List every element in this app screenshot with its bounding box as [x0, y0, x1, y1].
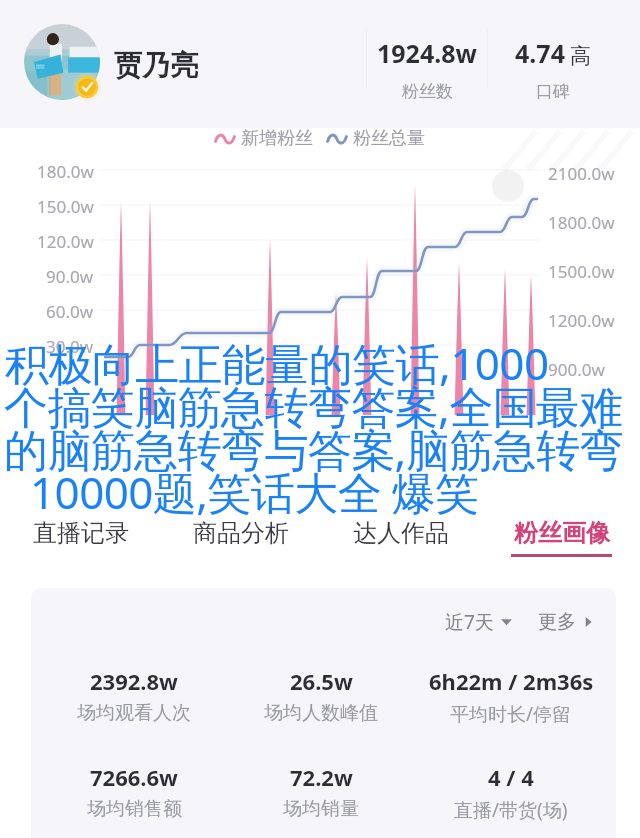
staticText: 26.5w [290, 666, 353, 696]
staticText: 900.0w [548, 358, 605, 381]
staticText: 1924.8w [377, 36, 477, 70]
staticText: 30.0w [46, 335, 94, 358]
staticText: 口碑 [536, 81, 570, 102]
staticText: 商品分析 [193, 518, 289, 548]
staticText: 90.0w [46, 265, 94, 288]
staticText: 近7天 [445, 609, 494, 635]
staticText: 更多 [538, 610, 576, 634]
staticText: 新增粉丝 [241, 127, 313, 150]
staticText: 60.0w [46, 300, 94, 323]
staticText: 平均时长/停留 [450, 701, 572, 727]
button[interactable]: 更多 [538, 610, 592, 634]
staticText: 粉丝总量 [353, 127, 425, 150]
button[interactable]: 粉丝画像 [481, 505, 640, 563]
button[interactable]: 达人作品 [321, 505, 481, 563]
button[interactable]: 近7天 [445, 609, 512, 635]
staticText: 7266.6w [90, 762, 178, 792]
staticText: 场均销量 [283, 797, 359, 821]
staticText: 120.0w [37, 230, 94, 253]
staticText: 6h22m / 2m36s [429, 666, 594, 696]
staticText: 10000题,笑话大全 爆笑 [30, 462, 479, 522]
staticText: 个搞笑脑筋急转弯答案,全国最难 [4, 376, 623, 436]
staticText: 直播/带货(场) [454, 797, 568, 823]
staticText: 场均人数峰值 [264, 701, 378, 725]
staticText: 粉丝画像 [514, 518, 610, 548]
staticText: 2100.0w [548, 162, 615, 185]
staticText: 场均销售额 [87, 797, 182, 821]
staticText: 达人作品 [353, 518, 449, 548]
staticText: 的脑筋急转弯与答案,脑筋急转弯 [4, 419, 623, 479]
staticText: 1200.0w [548, 309, 615, 332]
staticText: 粉丝数 [402, 81, 453, 102]
staticText: 积极向上正能量的笑话,1000 [5, 333, 549, 393]
staticText: 4.74 [515, 36, 565, 70]
staticText: 1500.0w [548, 260, 615, 283]
staticText: 直播记录 [33, 518, 129, 548]
staticText: 贾乃亮 [114, 48, 198, 83]
staticText: 高 [570, 43, 591, 69]
staticText: 150.0w [37, 195, 94, 218]
button[interactable]: 商品分析 [161, 505, 321, 563]
staticText: 场均观看人次 [77, 701, 191, 725]
staticText: 1800.0w [548, 211, 615, 234]
button[interactable]: 直播记录 [1, 505, 161, 563]
staticText: 4 / 4 [488, 762, 534, 792]
staticText: 2392.8w [90, 666, 178, 696]
staticText: 72.2w [290, 762, 353, 792]
staticText: 180.0w [37, 160, 94, 183]
